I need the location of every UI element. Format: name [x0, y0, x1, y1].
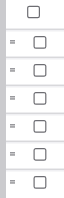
- button[interactable]: List item 6: [0, 141, 64, 169]
- button[interactable]: List item 5: [0, 113, 64, 141]
- button[interactable]: List item checkbox: [0, 0, 64, 29]
- button[interactable]: List item 3: [0, 57, 64, 85]
- button[interactable]: List item 7: [0, 169, 64, 197]
- button[interactable]: List item 2: [0, 29, 64, 57]
- button[interactable]: List item 4: [0, 85, 64, 113]
